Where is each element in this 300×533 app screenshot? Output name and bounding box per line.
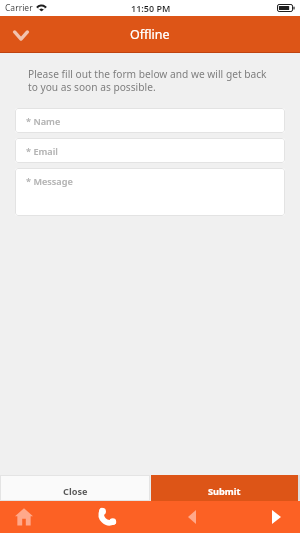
button[interactable]: Home xyxy=(3,501,45,533)
staticText: * Name xyxy=(26,115,61,128)
staticText: * Message xyxy=(26,175,73,188)
button[interactable]: Collapse xyxy=(7,21,35,49)
staticText: Submit xyxy=(208,485,241,498)
button[interactable]: * Name xyxy=(15,108,285,133)
button[interactable]: Forward xyxy=(255,501,297,533)
button[interactable]: * Message xyxy=(15,168,285,216)
staticText: Close xyxy=(63,485,88,498)
staticText: * Email xyxy=(26,145,58,158)
staticText: 11:50 PM xyxy=(131,2,171,14)
staticText: Offline xyxy=(130,26,170,43)
button[interactable]: * Email xyxy=(15,138,285,163)
staticText: Please fill out the form below and we wi… xyxy=(28,67,267,94)
button[interactable]: Submit xyxy=(151,475,298,501)
button[interactable]: Close xyxy=(0,475,150,501)
staticText: Carrier xyxy=(5,2,33,14)
button[interactable]: Call xyxy=(86,501,128,533)
button[interactable]: Back xyxy=(171,501,213,533)
